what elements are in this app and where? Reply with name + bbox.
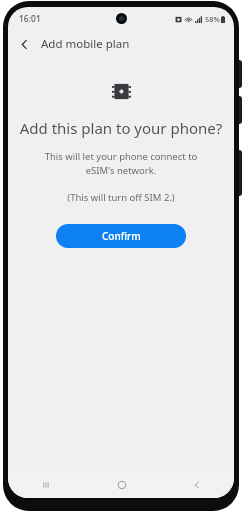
staticText: Confirm (102, 229, 141, 243)
button[interactable]: Back (159, 471, 234, 498)
staticText: Add this plan to your phone? (12, 118, 230, 138)
staticText: This will let your phone connect to eSIM… (20, 150, 222, 177)
staticText: 16:01 (19, 13, 41, 25)
staticText: (This will turn off SIM 2.) (8, 191, 234, 204)
button[interactable]: Home (84, 471, 159, 498)
button[interactable]: Confirm (56, 224, 186, 248)
button[interactable]: Recents (8, 471, 84, 498)
staticText: Add mobile plan (41, 36, 130, 52)
button[interactable]: Back (11, 31, 37, 57)
staticText: 58% (205, 14, 220, 24)
